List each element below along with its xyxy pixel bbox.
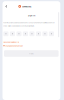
staticText: Sign in: [28, 14, 35, 17]
staticText: Resend code in 00:30: [3, 41, 19, 43]
button[interactable]: Resend code in 00:30: [3, 41, 19, 43]
button[interactable]: Back: [4, 4, 8, 8]
button[interactable]: Change phone number: [3, 44, 23, 47]
staticText: Change phone number: [5, 44, 23, 47]
staticText: the 8-digit code below to continue signi…: [3, 25, 34, 27]
staticText: connected.: [22, 5, 32, 8]
staticText: Next: [29, 52, 34, 55]
staticText: A verification code has been sent to you…: [3, 21, 55, 24]
